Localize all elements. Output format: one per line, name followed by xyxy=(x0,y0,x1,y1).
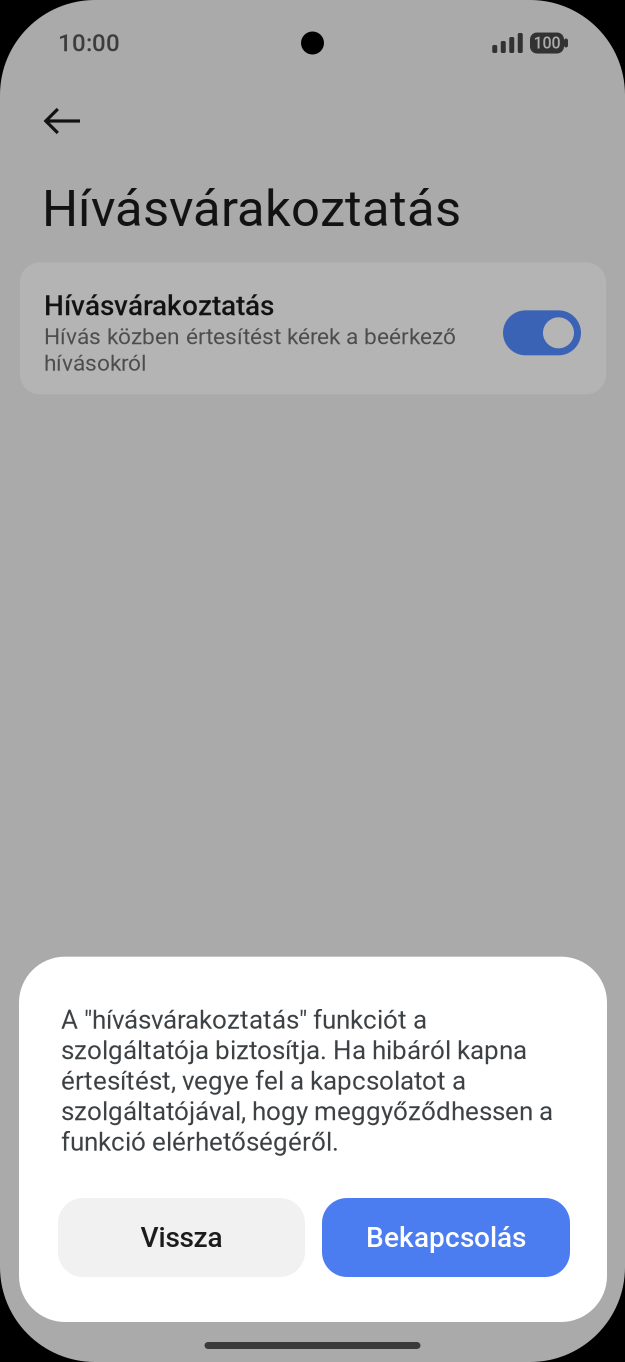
staticText: 100 xyxy=(533,34,560,52)
staticText: A "hívásvárakoztatás" funkciót a szolgál… xyxy=(61,1005,553,1157)
staticText: Hívásvárakoztatás xyxy=(44,289,274,322)
staticText: Hívásvárakoztatás xyxy=(42,179,461,238)
button[interactable]: Hívásvárakoztatás xyxy=(20,262,606,394)
staticText: Hívás közben értesítést kérek a beérkező… xyxy=(44,323,456,376)
button[interactable]: Vissza xyxy=(0,86,107,156)
staticText: Bekapcsolás xyxy=(366,1221,526,1254)
staticText: Vissza xyxy=(140,1221,222,1254)
button[interactable]: Vissza xyxy=(58,1198,305,1277)
button[interactable]: Bekapcsolás xyxy=(322,1198,570,1277)
staticText: 10:00 xyxy=(58,29,120,57)
